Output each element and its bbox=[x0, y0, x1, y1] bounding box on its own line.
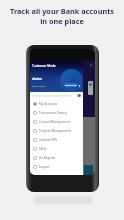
button[interactable]: Census Management bbox=[30, 117, 83, 126]
button[interactable]: Projects Management bbox=[30, 126, 83, 135]
staticText: Projects Management bbox=[39, 129, 71, 133]
staticText: De Register bbox=[39, 156, 56, 160]
staticText: Logout bbox=[39, 165, 50, 169]
button[interactable]: Search Customer Name Mobile bbox=[30, 92, 83, 99]
staticText: 9900112233 bbox=[32, 84, 46, 87]
staticText: My Accounts bbox=[39, 102, 58, 106]
staticText: Census Management bbox=[39, 120, 70, 124]
button[interactable]: My Accounts bbox=[30, 99, 83, 108]
button[interactable]: De Register bbox=[30, 153, 83, 162]
other: Menu bbox=[89, 63, 93, 67]
button[interactable]: Unblock PIN bbox=[30, 135, 83, 144]
staticText: FAQs bbox=[39, 147, 47, 151]
button[interactable]: FAQs bbox=[30, 144, 83, 153]
other: Toggle bbox=[76, 94, 81, 97]
button[interactable]: View Profile bbox=[64, 83, 77, 87]
staticText: chetan bbox=[32, 77, 42, 81]
staticText: Transaction History bbox=[39, 111, 68, 115]
staticText: Customer Mode bbox=[32, 64, 56, 68]
other: Open profile bbox=[78, 84, 81, 88]
staticText: Unblock PIN bbox=[39, 138, 57, 142]
staticText: View Profile bbox=[65, 84, 77, 87]
button[interactable]: Logout bbox=[30, 162, 83, 171]
button[interactable]: Transaction History bbox=[30, 108, 83, 117]
staticText: Track all your Bank accounts in one plac… bbox=[0, 6, 124, 26]
staticText: Search Customer Name Mobile bbox=[32, 94, 72, 98]
